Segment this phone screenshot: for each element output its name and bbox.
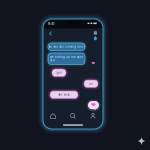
staticText: late 10ish [57,93,70,96]
button[interactable]: Profile [83,111,103,121]
button[interactable]: Encrypted [92,29,98,35]
button[interactable]: Back [47,29,54,38]
button[interactable]: Search [63,111,83,121]
staticText: are you still coming thru? [48,45,84,48]
button[interactable]: New message [88,101,99,110]
staticText: ight [56,71,62,74]
button[interactable]: Home [43,111,63,121]
staticText: 9:41 [48,22,54,26]
staticText: we hitting up the spot at 8 [50,55,83,62]
staticText: bet [88,82,93,85]
button[interactable]: Shared album [92,35,98,41]
